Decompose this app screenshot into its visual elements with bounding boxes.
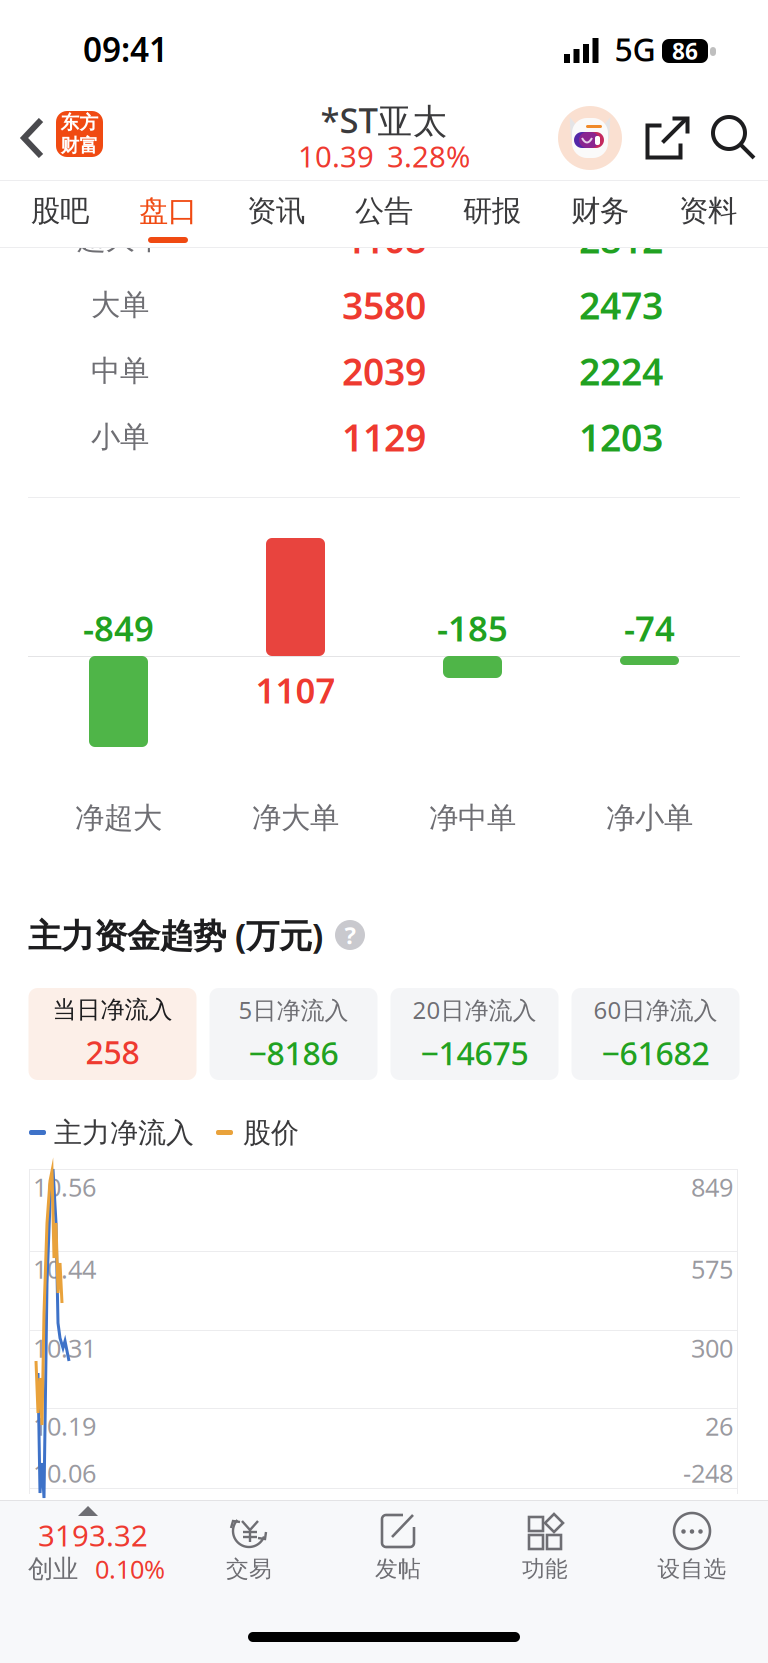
button[interactable]: Share — [644, 114, 691, 161]
staticText: 1129 — [342, 412, 426, 462]
staticText: 10.31 — [33, 1331, 96, 1365]
staticText: 3193.32 — [38, 1515, 148, 1554]
staticText: 1107 — [255, 667, 335, 713]
staticText: 当日净流入 — [52, 995, 172, 1024]
staticText: 10.44 — [33, 1252, 96, 1286]
staticText: 3580 — [342, 280, 426, 330]
button[interactable]: 研报 — [438, 181, 546, 247]
staticText: 300 — [691, 1331, 733, 1365]
staticText: 主力净流入 — [54, 1116, 194, 1150]
staticText: 大单 — [91, 287, 149, 323]
staticText: ? — [344, 919, 355, 951]
staticText: 资讯 — [247, 193, 305, 229]
button[interactable]: Assistant — [558, 106, 622, 170]
staticText: 3.28% — [387, 136, 470, 175]
staticText: 净大单 — [252, 800, 339, 836]
staticText: 设自选 — [657, 1555, 726, 1583]
staticText: 26 — [705, 1409, 733, 1443]
staticText: 10.19 — [33, 1409, 96, 1443]
staticText: 发帖 — [375, 1555, 421, 1583]
staticText: 超大单 — [76, 221, 163, 257]
staticText: 2224 — [579, 346, 663, 396]
staticText: 258 — [85, 1030, 139, 1073]
button[interactable]: 交易 — [186, 1500, 312, 1592]
staticText: 公告 — [355, 193, 413, 229]
staticText: 净小单 — [606, 800, 693, 836]
button[interactable]: 股吧 — [6, 181, 114, 247]
staticText: -74 — [624, 605, 675, 651]
staticText: 0.10% — [95, 1552, 165, 1586]
staticText: −8186 — [248, 1032, 338, 1074]
staticText: 5日净流入 — [238, 994, 348, 1026]
staticText: 财务 — [571, 193, 629, 229]
staticText: -849 — [83, 605, 154, 651]
staticText: 575 — [691, 1252, 733, 1286]
staticText: 10.39 — [298, 136, 374, 175]
button[interactable]: Search — [710, 114, 758, 162]
staticText: 股吧 — [31, 193, 89, 229]
button[interactable]: 当日净流入 — [28, 988, 196, 1080]
button[interactable]: East Money — [56, 111, 103, 157]
staticText: 2812 — [579, 214, 663, 264]
staticText: 资料 — [679, 193, 737, 229]
staticText: 10.56 — [33, 1170, 96, 1204]
staticText: 2473 — [579, 280, 663, 330]
button[interactable]: 功能 — [482, 1500, 608, 1592]
staticText: 创业 — [28, 1553, 78, 1584]
button[interactable]: 60日净流入 — [571, 988, 739, 1080]
staticText: 交易 — [226, 1555, 272, 1583]
staticText: 主力资金趋势 (万元) — [28, 913, 323, 957]
staticText: 小单 — [91, 419, 149, 455]
staticText: 研报 — [463, 193, 521, 229]
staticText: 盘口 — [139, 193, 197, 229]
staticText: 20日净流入 — [412, 994, 536, 1026]
button[interactable]: 资料 — [654, 181, 762, 247]
staticText: 东方 — [60, 111, 98, 134]
staticText: -248 — [683, 1456, 733, 1490]
staticText: 09:41 — [83, 27, 168, 71]
staticText: 60日净流入 — [593, 994, 717, 1026]
staticText: 5G — [614, 28, 655, 70]
button[interactable]: 公告 — [330, 181, 438, 247]
button[interactable]: Help — [323, 920, 365, 950]
button[interactable]: 5日净流入 — [209, 988, 377, 1080]
staticText: 净中单 — [429, 800, 516, 836]
staticText: 功能 — [522, 1555, 568, 1583]
button[interactable]: 20日净流入 — [390, 988, 558, 1080]
staticText: 2039 — [342, 346, 426, 396]
button[interactable]: 盘口 — [114, 181, 222, 247]
staticText: 股价 — [243, 1116, 299, 1150]
staticText: 4108 — [342, 214, 426, 264]
staticText: 1203 — [579, 412, 663, 462]
staticText: 财富 — [60, 134, 98, 157]
staticText: 849 — [691, 1170, 733, 1204]
staticText: 10.06 — [33, 1456, 96, 1490]
staticText: -185 — [437, 605, 508, 651]
button[interactable]: 设自选 — [629, 1500, 755, 1592]
staticText: *ST亚太 — [320, 97, 447, 143]
staticText: −14675 — [420, 1032, 528, 1074]
staticText: −61682 — [601, 1032, 709, 1074]
staticText: 86 — [672, 36, 698, 66]
button[interactable]: 财务 — [546, 181, 654, 247]
staticText: 中单 — [91, 353, 149, 389]
button[interactable]: 发帖 — [335, 1500, 461, 1592]
staticText: 净超大 — [75, 800, 162, 836]
button[interactable]: 3193.32 — [0, 1500, 196, 1592]
button[interactable]: 资讯 — [222, 181, 330, 247]
button[interactable]: Back — [8, 106, 68, 170]
